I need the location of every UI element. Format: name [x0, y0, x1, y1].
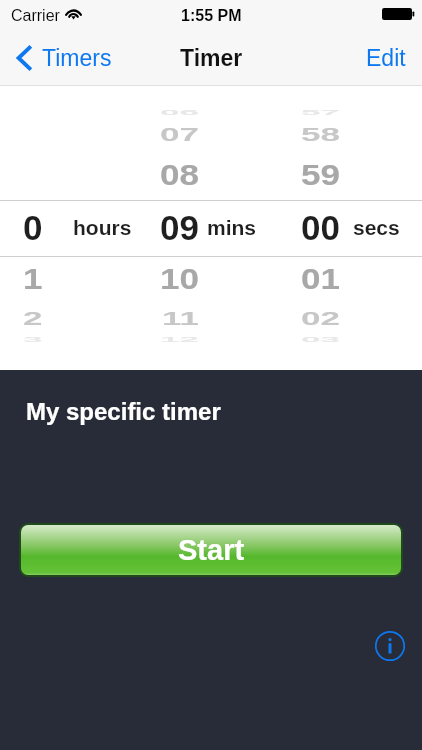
- staticText: 1:55 PM: [181, 7, 242, 25]
- staticText: 07: [160, 124, 199, 145]
- staticText: secs: [353, 216, 400, 239]
- staticText: Edit: [366, 45, 406, 71]
- staticText: 0: [23, 208, 43, 247]
- staticText: 11: [162, 307, 199, 329]
- staticText: hours: [73, 216, 132, 239]
- staticText: 1: [23, 262, 43, 294]
- staticText: 06: [160, 108, 199, 116]
- staticText: 00: [301, 208, 340, 247]
- staticText: 02: [301, 307, 340, 329]
- staticText: Start: [178, 534, 245, 566]
- staticText: 12: [160, 335, 199, 343]
- staticText: 58: [301, 124, 340, 145]
- staticText: My specific timer: [26, 398, 221, 425]
- button[interactable]: Timers: [0, 30, 122, 86]
- staticText: 09: [160, 208, 199, 247]
- button[interactable]: Hours wheel: [0, 86, 141, 370]
- staticText: 2: [23, 307, 43, 329]
- staticText: 08: [160, 158, 199, 190]
- staticText: 01: [301, 262, 340, 294]
- button[interactable]: Start: [21, 525, 401, 575]
- button[interactable]: Seconds wheel: [282, 86, 422, 370]
- staticText: 57: [301, 108, 340, 116]
- staticText: mins: [207, 216, 257, 239]
- staticText: 10: [160, 262, 199, 294]
- button[interactable]: Edit: [348, 30, 422, 86]
- button[interactable]: Minutes wheel: [141, 86, 282, 370]
- staticText: 03: [301, 335, 340, 343]
- staticText: 3: [23, 335, 43, 343]
- button[interactable]: Info: [374, 630, 405, 661]
- staticText: Carrier: [11, 7, 60, 25]
- staticText: Timer: [180, 45, 243, 71]
- staticText: 59: [301, 158, 340, 190]
- staticText: Timers: [42, 45, 112, 71]
